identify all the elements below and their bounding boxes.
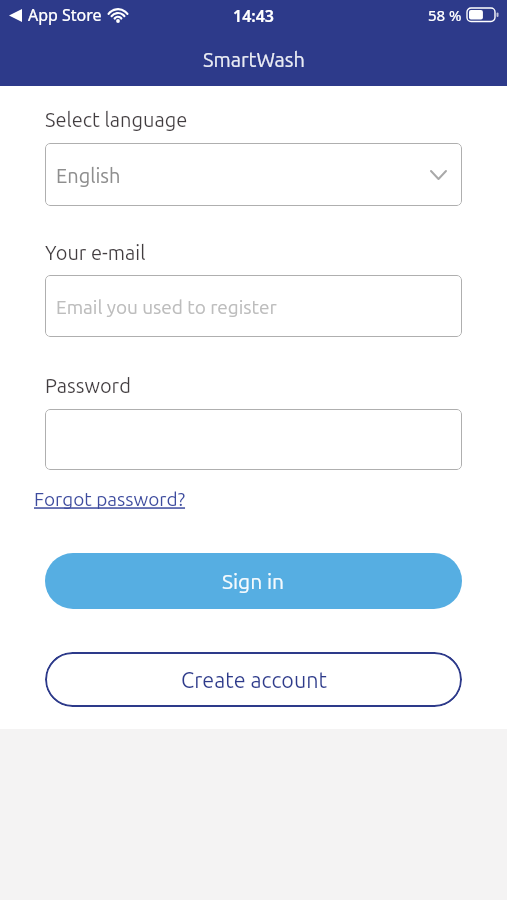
staticText: Sign in bbox=[222, 569, 285, 593]
button[interactable]: Create account bbox=[45, 652, 462, 707]
staticText: Select language bbox=[45, 108, 188, 130]
staticText: 58 % bbox=[428, 5, 462, 25]
staticText: Your e-mail bbox=[45, 241, 146, 263]
staticText: App Store bbox=[28, 4, 102, 26]
staticText: Create account bbox=[181, 668, 327, 692]
button[interactable] bbox=[45, 409, 462, 470]
button[interactable]: Sign in bbox=[45, 553, 462, 609]
button[interactable]: Email you used to register bbox=[45, 275, 462, 337]
staticText: Email you used to register bbox=[56, 296, 277, 317]
staticText: 14:43 bbox=[233, 5, 275, 27]
staticText: English bbox=[56, 164, 121, 186]
staticText: SmartWash bbox=[203, 48, 305, 70]
staticText: Password bbox=[45, 374, 131, 396]
button[interactable]: Forgot password? bbox=[34, 488, 186, 509]
button[interactable]: English bbox=[45, 143, 462, 206]
